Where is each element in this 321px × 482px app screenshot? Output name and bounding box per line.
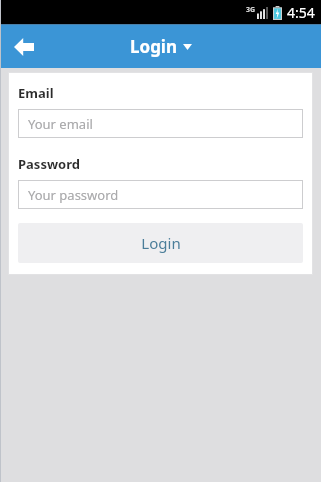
staticText: Login bbox=[141, 233, 181, 253]
staticText: Password bbox=[18, 155, 80, 173]
staticText: Email bbox=[18, 84, 54, 102]
button[interactable]: Back bbox=[0, 25, 48, 68]
button[interactable]: Your email bbox=[18, 109, 303, 138]
button[interactable]: Your password bbox=[18, 180, 303, 209]
staticText: Your email bbox=[28, 115, 93, 133]
button[interactable]: Login bbox=[130, 35, 192, 58]
button[interactable]: Login bbox=[18, 223, 303, 263]
staticText: Login bbox=[130, 35, 178, 58]
staticText: 4:54 bbox=[287, 3, 315, 22]
staticText: Your password bbox=[28, 186, 119, 204]
staticText: 3G bbox=[246, 5, 256, 15]
